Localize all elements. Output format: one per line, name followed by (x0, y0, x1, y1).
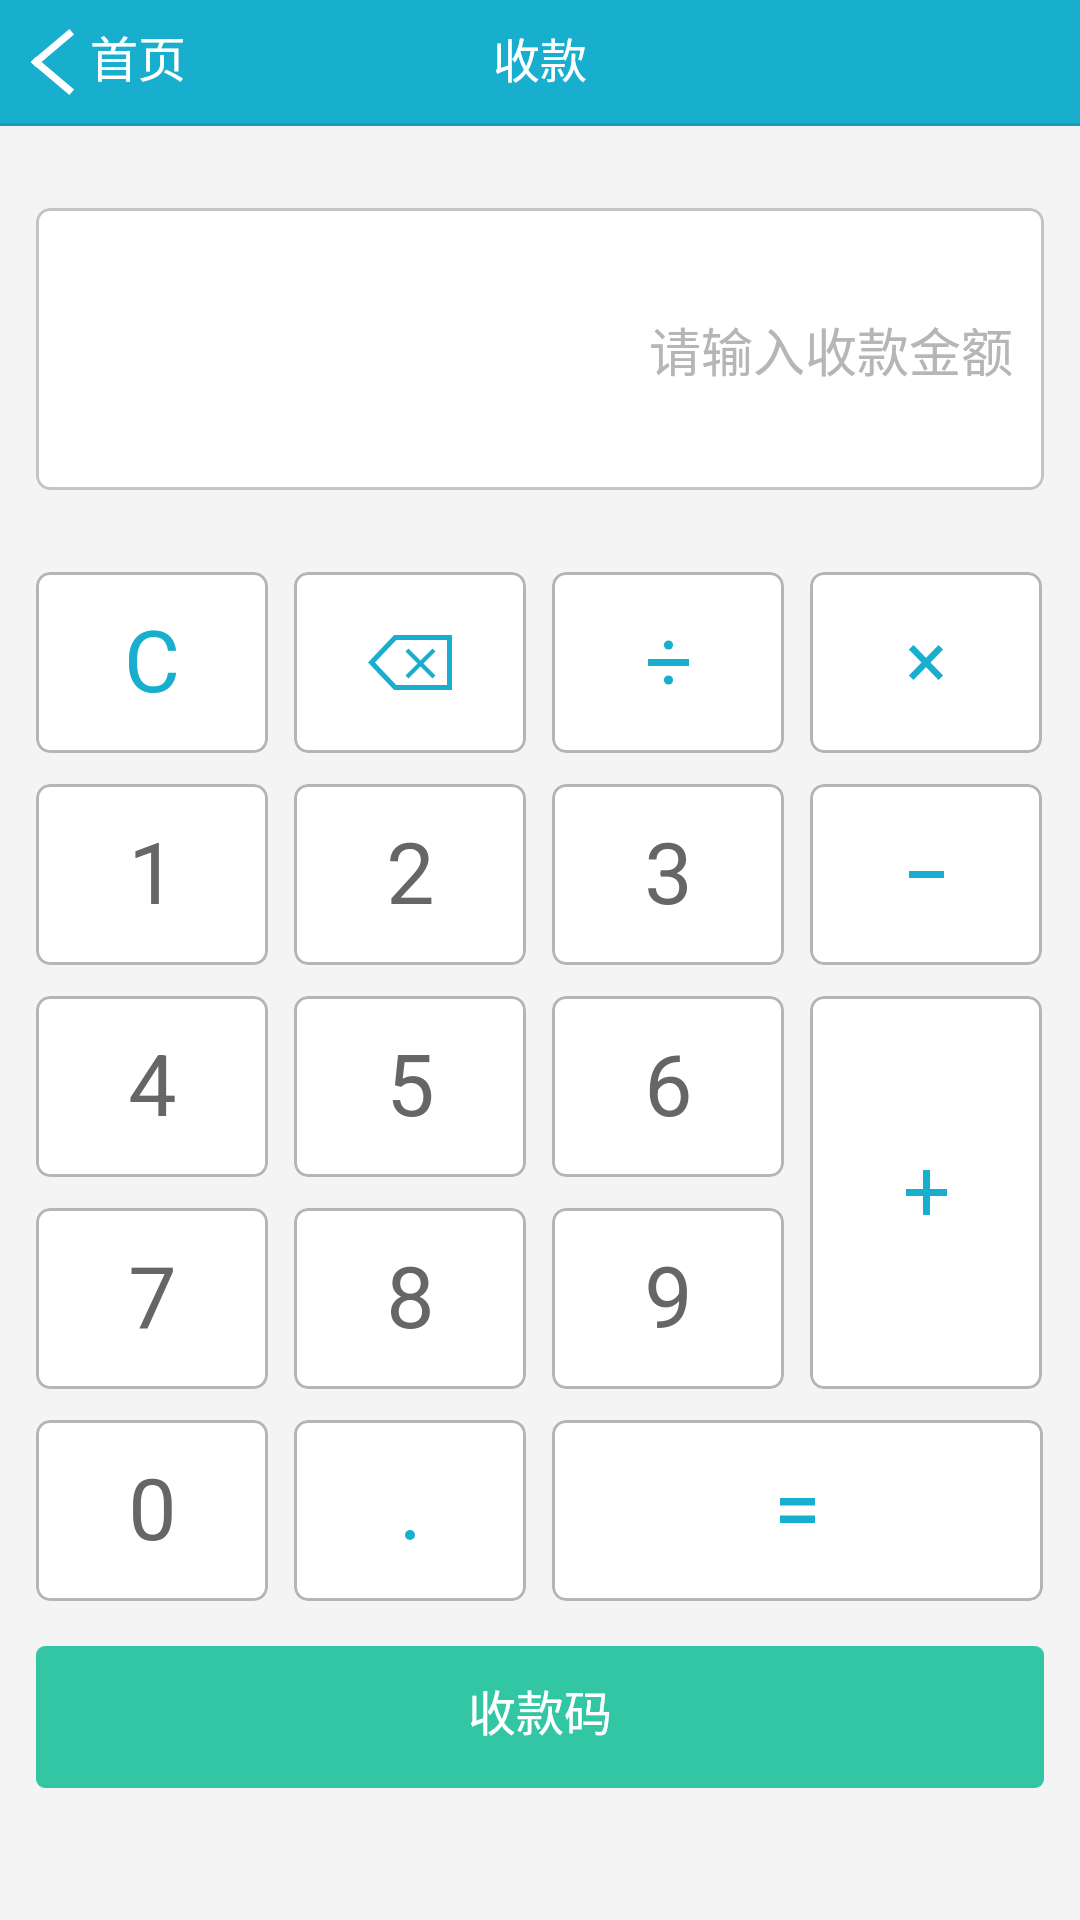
button[interactable]: 9 (552, 1208, 784, 1389)
button[interactable]: Equals (552, 1420, 1043, 1601)
button[interactable]: Decimal point (294, 1420, 526, 1601)
button[interactable]: Backspace (294, 572, 526, 753)
button[interactable]: 收款码 (36, 1646, 1044, 1788)
button[interactable]: 3 (552, 784, 784, 965)
staticText: 请输入收款金额 (649, 312, 1014, 387)
button[interactable]: Minus (810, 784, 1042, 965)
button[interactable]: 0 (36, 1420, 268, 1601)
staticText: 7 (128, 1248, 177, 1349)
staticText: 收款 (493, 23, 587, 91)
button[interactable]: C (36, 572, 268, 753)
staticText: 8 (386, 1248, 435, 1349)
staticText: 1 (128, 824, 177, 925)
button[interactable]: Multiply (810, 572, 1042, 753)
staticText: 3 (644, 824, 693, 925)
button[interactable]: 8 (294, 1208, 526, 1389)
staticText: 4 (128, 1036, 177, 1137)
staticText: 6 (644, 1036, 693, 1137)
staticText: 0 (128, 1460, 177, 1561)
button[interactable]: 7 (36, 1208, 268, 1389)
staticText: 收款码 (468, 1675, 613, 1745)
staticText: 9 (644, 1248, 693, 1349)
button[interactable]: 5 (294, 996, 526, 1177)
button[interactable]: Back to home (0, 0, 205, 126)
button[interactable]: Divide (552, 572, 784, 753)
staticText: 首页 (90, 21, 187, 91)
button[interactable]: 1 (36, 784, 268, 965)
button[interactable]: 2 (294, 784, 526, 965)
button[interactable]: 6 (552, 996, 784, 1177)
staticText: C (124, 612, 180, 713)
button[interactable]: 4 (36, 996, 268, 1177)
button[interactable]: 请输入收款金额 (36, 208, 1044, 490)
staticText: 5 (386, 1036, 435, 1137)
staticText: 2 (386, 824, 435, 925)
button[interactable]: Plus (810, 996, 1042, 1389)
